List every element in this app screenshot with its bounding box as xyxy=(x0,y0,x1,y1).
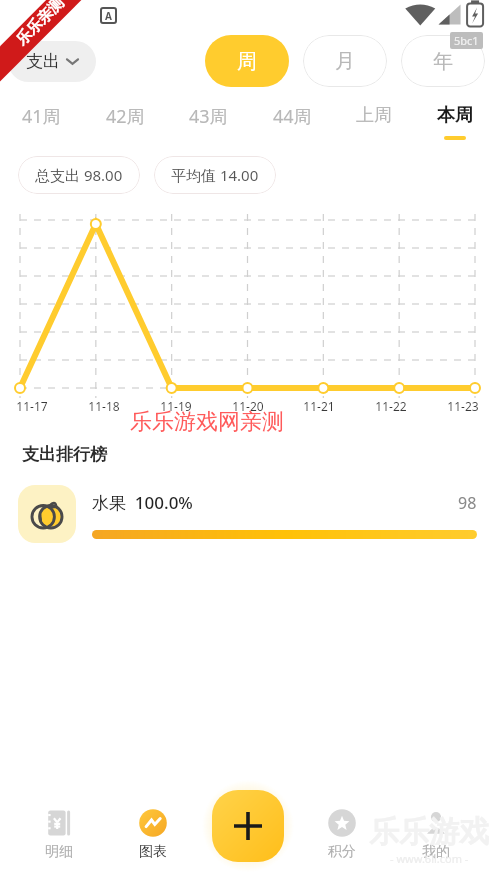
staticText: 11-18 xyxy=(76,398,132,414)
staticText: 43周 xyxy=(189,104,228,129)
staticText: 11-17 xyxy=(4,398,60,414)
button[interactable]: 周 xyxy=(205,35,289,87)
staticText: 支出排行榜 xyxy=(22,444,107,465)
button[interactable]: 图表 xyxy=(118,806,188,863)
button[interactable]: 积分 xyxy=(307,806,377,863)
staticText: 41周 xyxy=(22,104,61,129)
staticText: 5bc1 xyxy=(454,33,479,48)
staticText: - www.6ll.com - xyxy=(390,851,469,866)
staticText: 乐乐亲测 xyxy=(12,0,68,49)
staticText: 11-19 xyxy=(148,398,204,414)
button[interactable]: 44周 xyxy=(269,104,316,142)
staticText: 积分 xyxy=(328,843,356,861)
button[interactable]: 我的 xyxy=(401,806,471,863)
staticText: 本周 xyxy=(437,104,473,127)
button[interactable]: 月 xyxy=(303,35,387,87)
button[interactable]: 平均值 14.00 xyxy=(154,156,276,194)
staticText: 乐乐游戏 xyxy=(369,813,489,851)
button[interactable]: 明细 xyxy=(24,806,94,863)
staticText: 42周 xyxy=(106,104,145,129)
button[interactable]: Add xyxy=(212,790,284,862)
staticText: 98 xyxy=(458,492,477,514)
staticText: 总支出 98.00 xyxy=(35,165,123,185)
staticText: 周 xyxy=(237,49,257,74)
staticText: A xyxy=(105,9,112,23)
staticText: 年 xyxy=(433,49,453,74)
staticText: 11-21 xyxy=(291,398,347,414)
staticText: 乐乐游戏网亲测 xyxy=(130,408,284,436)
staticText: 明细 xyxy=(45,843,73,861)
staticText: 11-23 xyxy=(435,398,491,414)
staticText: 水果 100.0% xyxy=(92,491,193,514)
button[interactable]: 水果 100.0% xyxy=(0,485,495,543)
button[interactable]: 支出 xyxy=(8,41,96,82)
button[interactable]: 本周 xyxy=(433,104,477,140)
staticText: 上周 xyxy=(356,104,392,127)
button[interactable]: 43周 xyxy=(185,104,232,142)
button[interactable]: 上周 xyxy=(352,104,396,140)
button[interactable]: 总支出 98.00 xyxy=(18,156,140,194)
staticText: 11-22 xyxy=(363,398,419,414)
staticText: 平均值 14.00 xyxy=(171,165,259,185)
staticText: 月 xyxy=(335,49,355,74)
button[interactable]: 42周 xyxy=(102,104,149,142)
staticText: 11-20 xyxy=(220,398,276,414)
button[interactable]: 41周 xyxy=(18,104,65,142)
button[interactable]: 年 xyxy=(401,35,485,87)
staticText: 支出 xyxy=(26,51,60,72)
staticText: 图表 xyxy=(139,843,167,861)
staticText: 我的 xyxy=(422,843,450,861)
staticText: 44周 xyxy=(273,104,312,129)
